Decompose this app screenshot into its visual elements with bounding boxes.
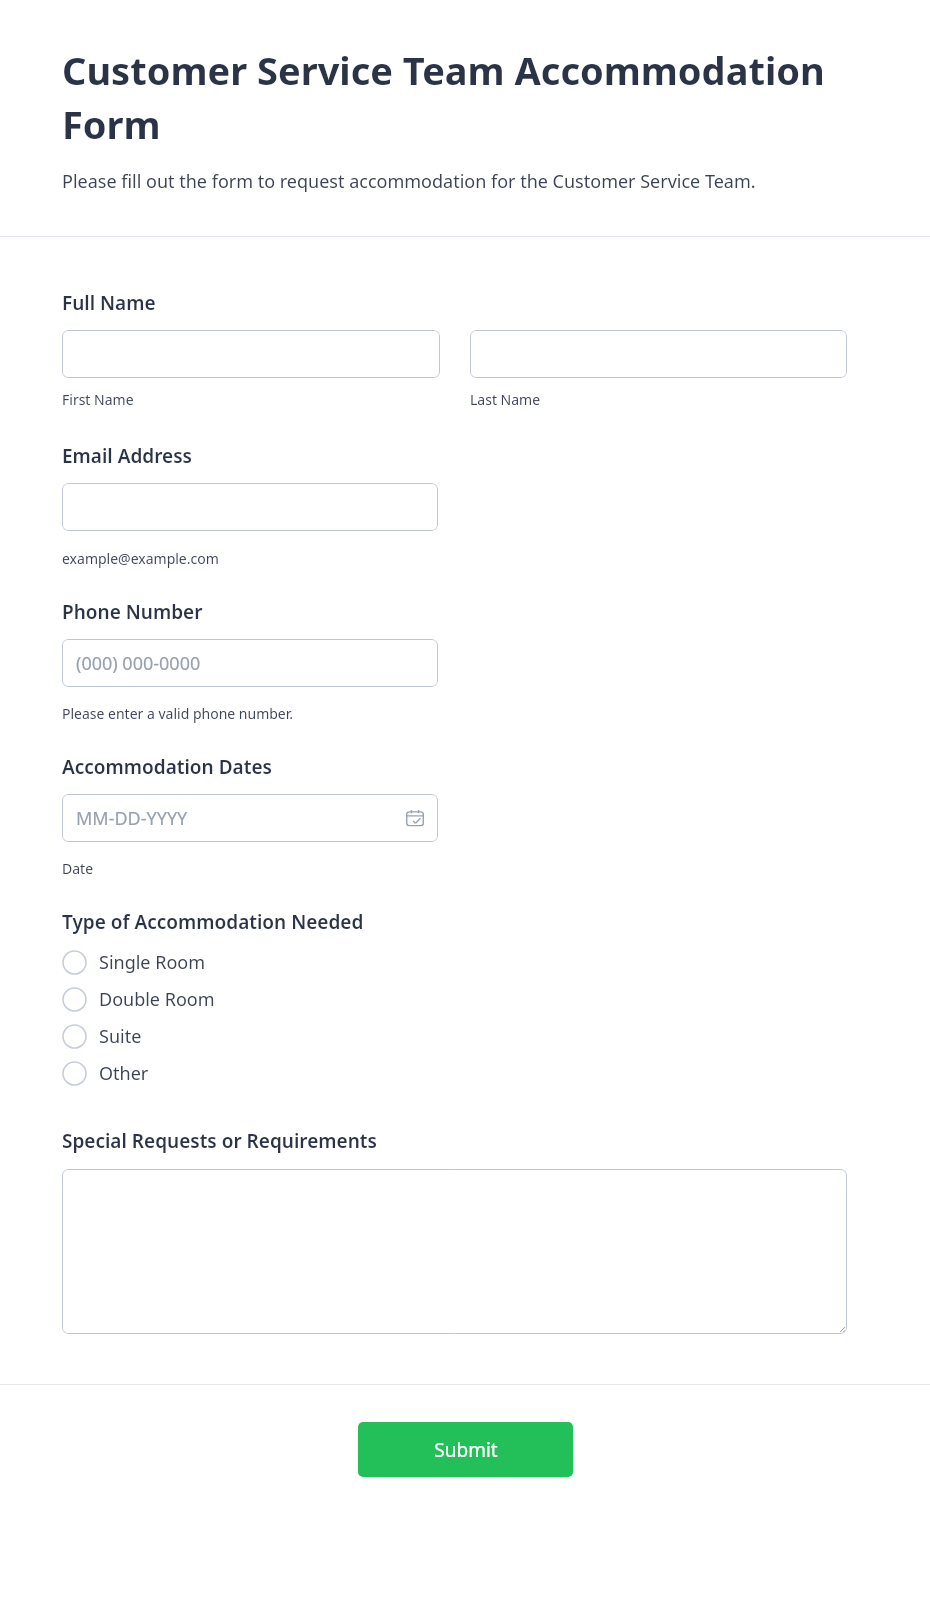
staticText: Phone Number: [62, 599, 203, 625]
staticText: Single Room: [99, 950, 206, 975]
staticText: Full Name: [62, 290, 156, 316]
button[interactable]: [62, 1169, 847, 1334]
staticText: Type of Accommodation Needed: [62, 909, 364, 935]
staticText: Special Requests or Requirements: [62, 1128, 377, 1154]
button[interactable]: (000) 000-0000: [62, 639, 438, 687]
staticText: Suite: [99, 1024, 142, 1049]
staticText: MM-DD-YYYY: [76, 806, 188, 831]
staticText: Last Name: [470, 390, 541, 409]
staticText: example@example.com: [62, 549, 219, 568]
button[interactable]: Single Room: [62, 944, 482, 981]
button[interactable]: Double Room: [62, 981, 482, 1018]
staticText: Double Room: [99, 987, 215, 1012]
staticText: First Name: [62, 390, 134, 409]
button[interactable]: MM-DD-YYYY: [62, 794, 438, 842]
staticText: Submit: [434, 1437, 498, 1463]
staticText: Email Address: [62, 443, 192, 469]
button[interactable]: [62, 330, 440, 378]
button[interactable]: Other: [62, 1055, 482, 1092]
staticText: Other: [99, 1061, 149, 1086]
staticText: (000) 000-0000: [76, 651, 201, 676]
button[interactable]: Suite: [62, 1018, 482, 1055]
staticText: Please enter a valid phone number.: [62, 704, 294, 723]
staticText: Please fill out the form to request acco…: [62, 169, 756, 194]
staticText: Customer Service Team Accommodation Form: [62, 44, 860, 150]
staticText: Accommodation Dates: [62, 754, 272, 780]
button[interactable]: [62, 483, 438, 531]
staticText: Date: [62, 859, 94, 878]
other: Pick date: [406, 809, 424, 827]
button[interactable]: [470, 330, 847, 378]
button[interactable]: Submit: [358, 1422, 573, 1477]
